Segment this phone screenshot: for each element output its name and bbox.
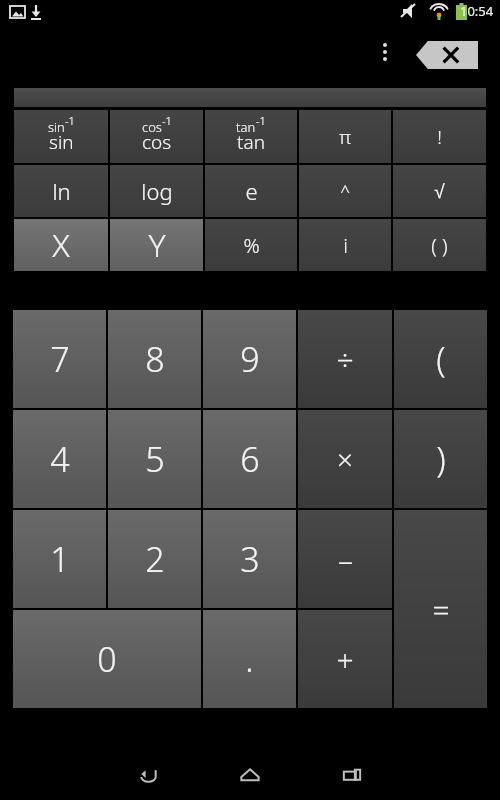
staticText: Y (148, 223, 166, 267)
button[interactable]: cos (110, 110, 203, 163)
button[interactable]: √ (393, 165, 486, 217)
staticText: √ (434, 181, 445, 202)
button[interactable]: log (110, 165, 203, 217)
button[interactable]: × (298, 410, 392, 508)
button[interactable]: 4 (13, 410, 106, 508)
staticText: cos (142, 118, 162, 136)
staticText: ! (437, 124, 442, 150)
staticText: × (337, 440, 353, 478)
button[interactable]: . (203, 610, 296, 708)
button[interactable]: ^ (299, 165, 391, 217)
staticText: i (343, 232, 348, 259)
button[interactable]: 3 (203, 510, 296, 608)
staticText: ln (52, 176, 71, 206)
button[interactable]: i (299, 219, 391, 271)
staticText: ( (436, 336, 446, 382)
staticText: -1 (256, 113, 266, 128)
button[interactable]: Y (110, 219, 203, 271)
staticText: -1 (65, 113, 75, 128)
staticText: sin (49, 129, 74, 155)
button[interactable]: + (298, 610, 392, 708)
staticText: 7 (50, 336, 70, 382)
button[interactable]: ) (394, 410, 487, 508)
button[interactable]: More options (372, 32, 398, 72)
staticText: 2 (145, 536, 165, 582)
staticText: 5 (145, 436, 165, 482)
staticText: 3 (240, 536, 260, 582)
button[interactable]: ( ) (393, 219, 486, 271)
staticText: ÷ (336, 339, 354, 380)
button[interactable]: e (205, 165, 297, 217)
staticText: = (432, 589, 450, 630)
staticText: tan (237, 129, 265, 155)
button[interactable]: 9 (203, 310, 296, 408)
staticText: -1 (162, 113, 172, 128)
button[interactable]: – (298, 510, 392, 608)
button[interactable]: 7 (13, 310, 106, 408)
staticText: X (52, 223, 70, 267)
staticText: cos (142, 129, 172, 155)
button[interactable]: π (299, 110, 391, 163)
button[interactable]: ln (14, 165, 108, 217)
staticText: ^ (340, 180, 350, 203)
staticText: 10:54 (460, 2, 494, 20)
staticText: – (338, 539, 353, 580)
button[interactable]: ( (394, 310, 487, 408)
button[interactable]: sin (14, 110, 108, 163)
button[interactable]: Back (109, 750, 187, 800)
button[interactable]: 0 (13, 610, 201, 708)
button[interactable]: ÷ (298, 310, 392, 408)
button[interactable]: X (14, 219, 108, 271)
staticText: e (245, 176, 258, 206)
button[interactable]: Home (211, 750, 289, 800)
staticText: π (339, 124, 351, 150)
button[interactable]: 2 (108, 510, 201, 608)
staticText: 1 (50, 536, 70, 582)
button[interactable]: 6 (203, 410, 296, 508)
button[interactable]: 1 (13, 510, 106, 608)
staticText: 0 (97, 636, 117, 682)
staticText: ) (436, 436, 446, 482)
button[interactable] (14, 88, 486, 107)
button[interactable]: Backspace (416, 41, 478, 69)
button[interactable]: ! (393, 110, 486, 163)
button[interactable]: 5 (108, 410, 201, 508)
staticText: 9 (240, 336, 260, 382)
staticText: 4 (50, 436, 70, 482)
staticText: tan (236, 118, 256, 136)
staticText: 8 (145, 336, 165, 382)
staticText: . (245, 636, 254, 682)
button[interactable]: = (394, 510, 487, 708)
button[interactable]: 8 (108, 310, 201, 408)
staticText: ( ) (431, 232, 448, 259)
staticText: % (243, 232, 260, 259)
staticText: sin (48, 118, 65, 136)
staticText: 6 (240, 436, 260, 482)
button[interactable]: Recent apps (313, 750, 391, 800)
button[interactable]: % (205, 219, 297, 271)
staticText: log (141, 176, 173, 206)
staticText: + (336, 639, 354, 680)
button[interactable]: tan (205, 110, 297, 163)
